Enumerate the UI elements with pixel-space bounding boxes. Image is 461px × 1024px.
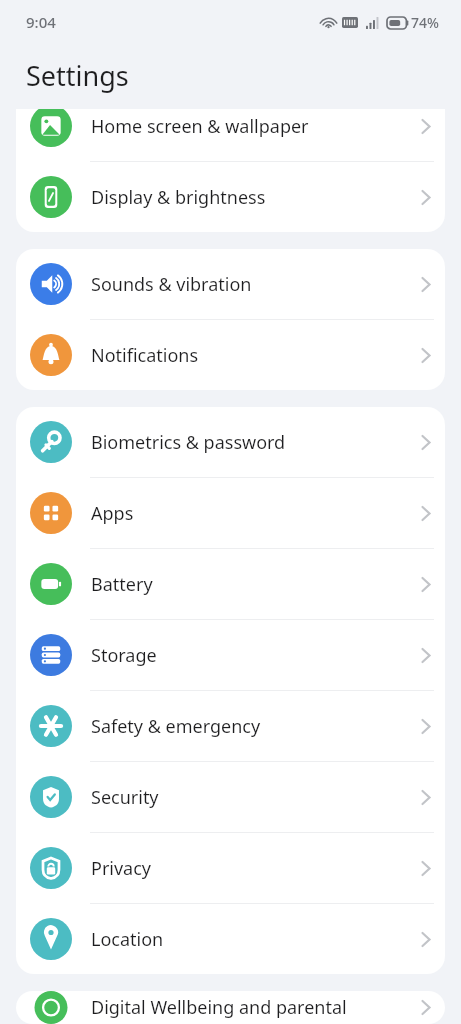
staticText: Apps xyxy=(91,501,421,526)
button[interactable]: Biometrics & password xyxy=(16,407,445,477)
button[interactable]: Security xyxy=(16,762,445,832)
button[interactable]: Notifications xyxy=(16,320,445,390)
staticText: Security xyxy=(91,785,421,810)
staticText: Digital Wellbeing and parental xyxy=(91,995,421,1020)
staticText: Display & brightness xyxy=(91,185,421,210)
staticText: Battery xyxy=(91,572,421,597)
button[interactable]: Apps xyxy=(16,478,445,548)
button[interactable]: Battery xyxy=(16,549,445,619)
staticText: Location xyxy=(91,927,421,952)
staticText: Privacy xyxy=(91,856,421,881)
button[interactable]: Privacy xyxy=(16,833,445,903)
button[interactable]: Safety & emergency xyxy=(16,691,445,761)
staticText: Storage xyxy=(91,643,421,668)
staticText: Biometrics & password xyxy=(91,430,421,455)
button[interactable]: Storage xyxy=(16,620,445,690)
staticText: Sounds & vibration xyxy=(91,272,421,297)
button[interactable]: Location xyxy=(16,904,445,974)
staticText: Settings xyxy=(26,57,129,94)
staticText: Home screen & wallpaper xyxy=(91,114,421,139)
staticText: 9:04 xyxy=(26,12,56,32)
staticText: 74% xyxy=(411,13,439,32)
staticText: Notifications xyxy=(91,343,421,368)
button[interactable]: Digital Wellbeing and parental xyxy=(16,991,445,1024)
button[interactable]: Display & brightness xyxy=(16,162,445,232)
button[interactable]: Sounds & vibration xyxy=(16,249,445,319)
staticText: Safety & emergency xyxy=(91,714,421,739)
button[interactable]: Home screen & wallpaper xyxy=(16,109,445,161)
